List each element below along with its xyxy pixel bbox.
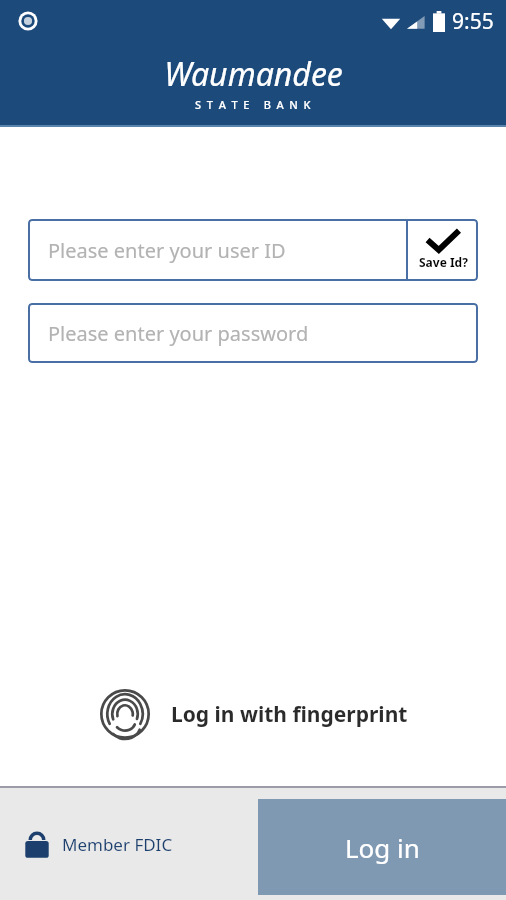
button[interactable]: Please enter your user ID — [28, 219, 406, 281]
button[interactable]: Log in with fingerprint — [0, 674, 506, 754]
staticText: Waumandee — [164, 52, 343, 96]
button[interactable]: Please enter your password — [28, 303, 478, 363]
staticText: Please enter your user ID — [48, 237, 286, 264]
button[interactable]: Log in — [258, 799, 506, 895]
staticText: Please enter your password — [48, 320, 309, 347]
staticText: 9:55 — [452, 7, 494, 36]
button[interactable]: Save Id — [408, 219, 478, 281]
staticText: Log in with fingerprint — [171, 700, 408, 729]
button[interactable]: Member FDIC — [24, 829, 173, 859]
staticText: Save Id? — [419, 254, 468, 270]
staticText: S T A T E B A N K — [195, 97, 312, 112]
staticText: Log in — [345, 830, 420, 865]
staticText: Member FDIC — [62, 833, 173, 856]
